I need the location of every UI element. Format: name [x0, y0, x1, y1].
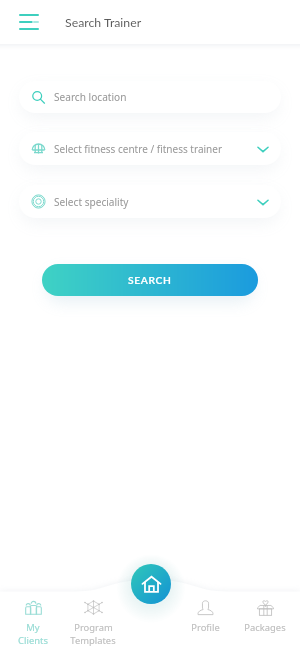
staticText: Templates [70, 634, 116, 646]
button[interactable]: Program [63, 596, 123, 646]
button[interactable]: Select fitness centre / fitness trainer [19, 132, 281, 165]
staticText: Select speciality [54, 195, 129, 209]
staticText: Select fitness centre / fitness trainer [54, 142, 223, 156]
staticText: SEARCH [128, 274, 172, 286]
button[interactable]: Select speciality [19, 185, 281, 218]
button[interactable]: Menu [16, 9, 42, 35]
button[interactable]: Search location [19, 81, 281, 113]
button[interactable]: SEARCH [42, 264, 258, 296]
staticText: My [26, 621, 40, 634]
button[interactable]: Home [131, 564, 171, 604]
staticText: Search location [54, 90, 127, 104]
staticText: Profile [191, 621, 220, 634]
button[interactable]: Expand [252, 191, 274, 213]
button[interactable]: Expand [252, 138, 274, 160]
staticText: Search Trainer [65, 15, 142, 30]
button[interactable]: Packages [235, 596, 295, 646]
button[interactable]: Profile [175, 596, 235, 646]
staticText: Program [74, 621, 113, 634]
button[interactable]: My [3, 596, 63, 646]
staticText: Packages [244, 621, 286, 634]
staticText: Clients [18, 634, 48, 646]
